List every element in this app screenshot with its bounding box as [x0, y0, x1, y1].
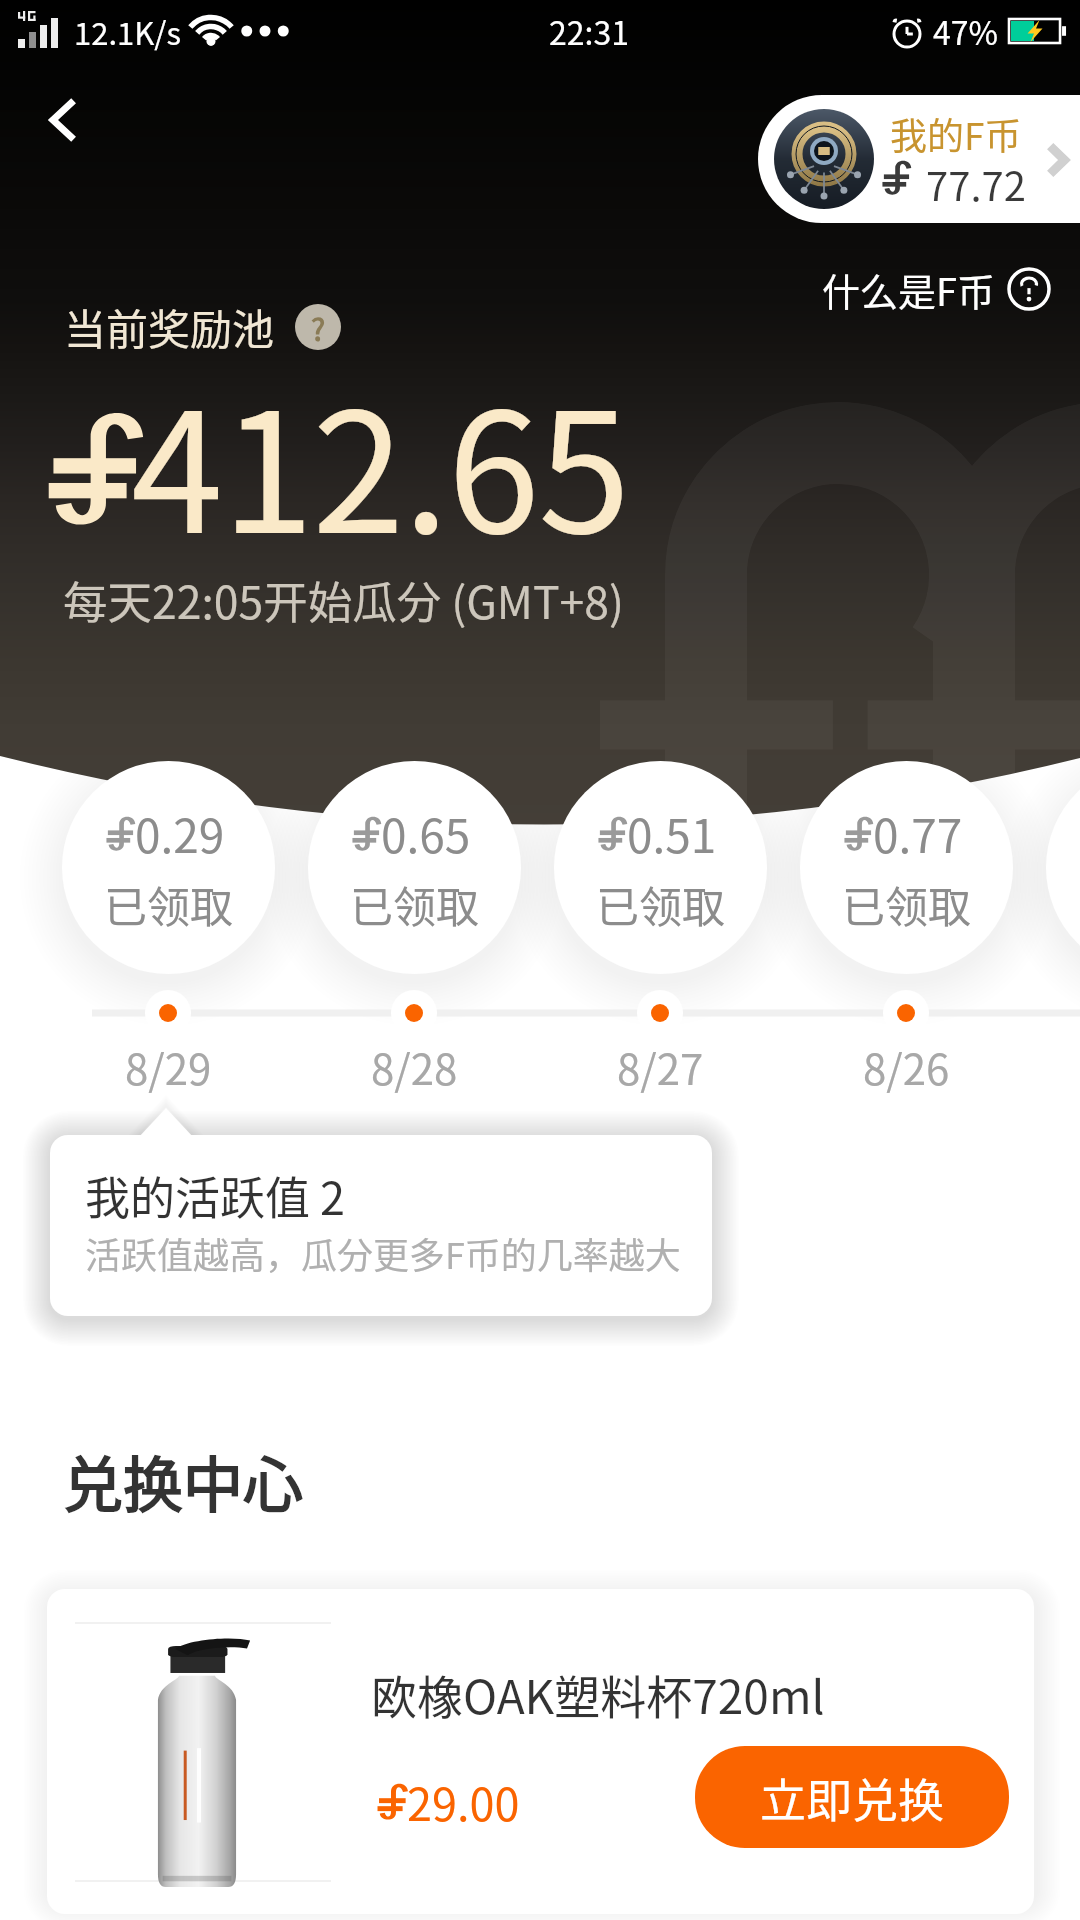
button[interactable]: 我的活跃值 2 — [50, 1135, 712, 1316]
button[interactable]: Help — [295, 304, 341, 350]
staticText: 0.77 — [873, 800, 963, 867]
staticText: 兑换中心 — [63, 1437, 303, 1524]
button[interactable]: 0.77 — [800, 761, 1013, 974]
staticText: 12.1K/s — [74, 9, 181, 54]
staticText: 每天22:05开始瓜分 (GMT+8) — [63, 567, 625, 631]
staticText: 活跃值越高，瓜分更多F币的几率越大 — [85, 1227, 681, 1279]
staticText: 0.51 — [627, 800, 717, 867]
staticText: 什么是F币 — [822, 262, 995, 317]
button[interactable]: 0.65 — [308, 761, 521, 974]
staticText: 我的F币 — [890, 107, 1022, 161]
staticText: 29.00 — [407, 1769, 520, 1834]
staticText: 我的活跃值 2 — [85, 1163, 346, 1228]
staticText: 已领取 — [104, 873, 233, 935]
button[interactable]: 欧橡OAK塑料杯720ml — [47, 1589, 1034, 1914]
staticText: 22:31 — [549, 8, 629, 54]
staticText: 0.65 — [381, 800, 471, 867]
button[interactable]: 立即兑换 — [695, 1746, 1009, 1848]
staticText: 8/28 — [371, 1036, 458, 1097]
staticText: 8/27 — [617, 1036, 704, 1097]
button[interactable]: 我的F币 — [758, 95, 1080, 223]
staticText: 欧橡OAK塑料杯720ml — [371, 1661, 825, 1728]
staticText: 立即兑换 — [760, 1764, 944, 1831]
staticText: 已领取 — [350, 873, 479, 935]
button[interactable]: Back — [22, 78, 106, 162]
button[interactable]: 0.29 — [62, 761, 275, 974]
staticText: 已领取 — [596, 873, 725, 935]
staticText: 8/26 — [863, 1036, 950, 1097]
staticText: 当前奖励池 — [64, 296, 275, 357]
button[interactable]: 什么是F币 — [814, 260, 1059, 318]
staticText: ? — [311, 306, 326, 349]
staticText: 412.65 — [131, 340, 629, 580]
staticText: 8/29 — [125, 1036, 212, 1097]
button[interactable]: 0.51 — [554, 761, 767, 974]
staticText: 0.29 — [135, 800, 225, 867]
staticText: 已领取 — [842, 873, 971, 935]
button[interactable] — [1046, 761, 1080, 974]
staticText: 47% — [933, 8, 998, 54]
staticText: 77.72 — [926, 155, 1026, 213]
